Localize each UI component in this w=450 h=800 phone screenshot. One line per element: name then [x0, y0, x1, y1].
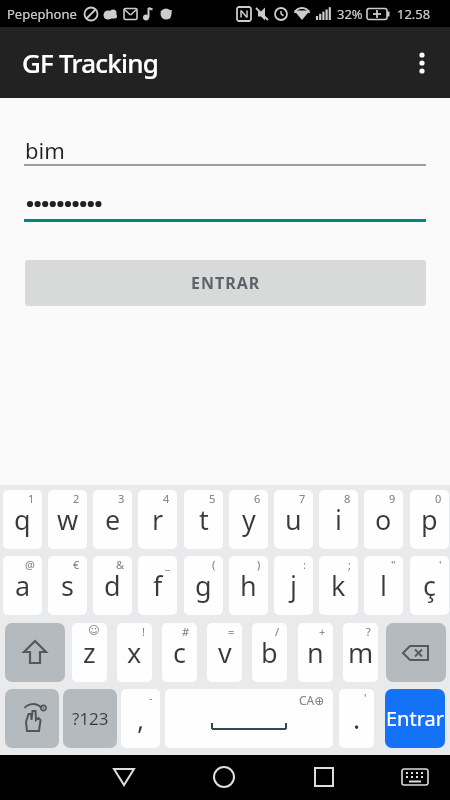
staticText: bim [25, 135, 65, 165]
staticText: n [307, 634, 324, 671]
staticText: ' [439, 557, 442, 572]
button[interactable]: ENTRAR [25, 260, 426, 306]
button[interactable]: ?123 [63, 689, 117, 748]
staticText: € [73, 557, 80, 572]
staticText: 3 [118, 491, 125, 506]
staticText: v [218, 634, 232, 671]
staticText: s [61, 567, 74, 604]
button[interactable]: b [252, 623, 287, 682]
button[interactable]: z [72, 623, 107, 682]
button[interactable] [5, 689, 59, 748]
button[interactable]: n [298, 623, 333, 682]
button[interactable]: e [93, 490, 132, 549]
staticText: # [182, 624, 190, 639]
staticText: 7 [299, 491, 306, 506]
staticText: k [331, 567, 346, 604]
staticText: _ [165, 557, 170, 572]
button[interactable]: g [184, 556, 223, 615]
staticText: ; [348, 557, 351, 572]
staticText: 8 [344, 491, 351, 506]
button[interactable]: u [274, 490, 313, 549]
button[interactable]: r [138, 490, 177, 549]
staticText: ç [423, 567, 436, 604]
button[interactable]: q [3, 490, 42, 549]
staticText: m [348, 634, 374, 671]
staticText: ' [364, 690, 367, 705]
staticText: " [391, 557, 396, 572]
staticText: d [104, 567, 121, 604]
staticText: x [127, 634, 142, 671]
staticText: 0 [435, 491, 442, 506]
button[interactable]: i [319, 490, 358, 549]
staticText: Pepephone [7, 5, 77, 23]
button[interactable]: o [364, 490, 403, 549]
button[interactable]: y [229, 490, 268, 549]
staticText: r [152, 501, 164, 538]
button[interactable]: x [117, 623, 152, 682]
staticText: : [303, 557, 306, 572]
staticText: ENTRAR [191, 272, 261, 294]
staticText: w [57, 501, 79, 538]
staticText: - [149, 690, 153, 705]
button[interactable] [300, 755, 450, 800]
staticText: 1 [28, 491, 35, 506]
button[interactable] [150, 755, 300, 800]
staticText: 32% [337, 5, 363, 23]
staticText: 9 [389, 491, 396, 506]
button[interactable]: a [3, 556, 42, 615]
staticText: , [137, 700, 145, 737]
staticText: ) [257, 557, 261, 572]
staticText: j [290, 567, 297, 604]
staticText: ! [142, 624, 145, 639]
staticText: a [15, 567, 31, 604]
staticText: q [14, 501, 31, 538]
button[interactable]: m [343, 623, 378, 682]
button[interactable]: p [410, 490, 449, 549]
button[interactable]: w [48, 490, 87, 549]
staticText: ? [366, 624, 371, 639]
staticText: p [421, 501, 438, 538]
staticText: @ [25, 557, 35, 572]
button[interactable] [406, 47, 438, 79]
staticText: CA⊕ [299, 692, 325, 708]
button[interactable] [0, 755, 150, 800]
button[interactable]: . [339, 689, 374, 748]
staticText: Entrar [386, 705, 445, 732]
staticText: 5 [209, 491, 216, 506]
staticText: h [240, 567, 257, 604]
staticText: & [116, 557, 125, 572]
button[interactable]: c [162, 623, 197, 682]
button[interactable]: , [121, 689, 160, 748]
staticText: u [285, 501, 302, 538]
staticText: 4 [163, 491, 170, 506]
staticText: . [353, 700, 361, 737]
button[interactable] [386, 623, 446, 682]
staticText: c [173, 634, 186, 671]
button[interactable]: Entrar [385, 689, 445, 748]
staticText: ☺ [88, 624, 100, 637]
staticText: i [335, 501, 342, 538]
staticText: t [199, 501, 209, 538]
staticText: / [275, 624, 280, 639]
staticText: z [83, 634, 96, 671]
staticText: l [380, 567, 387, 604]
staticText: e [105, 501, 121, 538]
button[interactable]: l [364, 556, 403, 615]
button[interactable]: ç [410, 556, 449, 615]
button[interactable]: v [207, 623, 242, 682]
staticText: GF Tracking [22, 45, 158, 80]
button[interactable]: h [229, 556, 268, 615]
button[interactable]: t [184, 490, 223, 549]
button[interactable]: s [48, 556, 87, 615]
staticText: b [261, 634, 278, 671]
staticText: ?123 [72, 707, 109, 730]
button[interactable]: j [274, 556, 313, 615]
staticText: f [153, 567, 163, 604]
staticText: y [242, 501, 256, 538]
staticText: g [195, 567, 212, 604]
button[interactable]: k [319, 556, 358, 615]
button[interactable] [5, 623, 65, 682]
button[interactable]: CA⊕ [165, 689, 333, 748]
button[interactable]: d [93, 556, 132, 615]
button[interactable]: f [138, 556, 177, 615]
